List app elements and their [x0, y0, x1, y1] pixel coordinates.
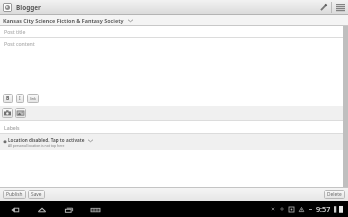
button[interactable]: link	[27, 94, 39, 103]
button[interactable]: Back	[8, 203, 21, 216]
button[interactable]: More options	[332, 0, 348, 15]
button[interactable]: Location disabled. Tap to activate	[0, 134, 343, 150]
staticText: Labels	[4, 124, 20, 131]
button[interactable]: Delete	[324, 190, 345, 199]
staticText: All personal location is not top here	[8, 143, 65, 148]
staticText: Location disabled. Tap to activate	[8, 137, 85, 143]
staticText: Publish	[6, 191, 23, 198]
button[interactable]: Keyboard	[89, 203, 102, 216]
staticText: Post title	[4, 28, 26, 35]
staticText: Save	[31, 191, 42, 198]
staticText: Delete	[327, 191, 342, 198]
button[interactable]: Publish	[3, 190, 26, 199]
button[interactable]: B	[3, 94, 13, 103]
button[interactable]: Save	[28, 190, 45, 199]
staticText: Blogger	[16, 3, 41, 12]
button[interactable]: Post title	[0, 26, 343, 37]
button[interactable]: New post	[316, 0, 331, 15]
staticText: I	[19, 95, 21, 102]
button[interactable]: Kansas City Science Fiction & Fantasy So…	[0, 15, 348, 26]
staticText: Kansas City Science Fiction & Fantasy So…	[3, 17, 124, 24]
button[interactable]: Take photo	[2, 108, 13, 118]
button[interactable]: I	[16, 94, 24, 103]
staticText: B	[6, 95, 10, 102]
button[interactable]: Home	[35, 203, 48, 216]
staticText: 9:57	[316, 204, 331, 214]
button[interactable]: Labels	[0, 121, 343, 133]
staticText: Post content	[4, 40, 35, 47]
button[interactable]: Recent apps	[62, 203, 75, 216]
staticText: link	[30, 96, 36, 101]
button[interactable]: Insert image	[15, 108, 26, 118]
